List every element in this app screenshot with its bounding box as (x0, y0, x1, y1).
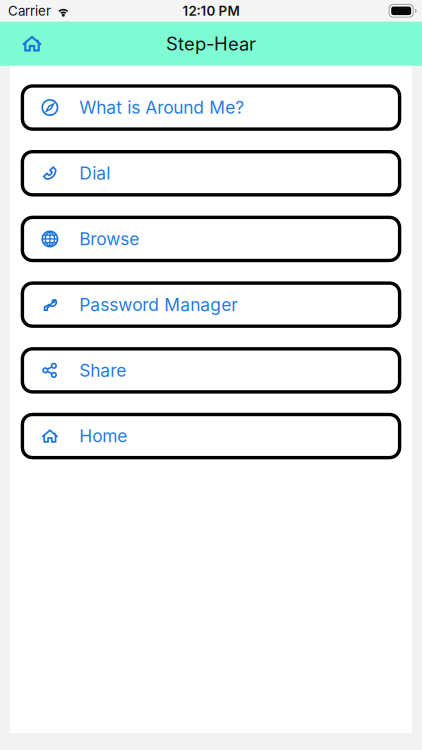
button[interactable]: What is Around Me? (21, 84, 401, 131)
button[interactable]: Dial (21, 150, 401, 196)
staticText: Share (79, 360, 126, 381)
staticText: 12:10 PM (182, 3, 239, 19)
button[interactable]: Browse (21, 216, 401, 262)
staticText: Carrier (8, 3, 51, 19)
button[interactable]: Password Manager (21, 281, 401, 328)
staticText: Password Manager (79, 294, 238, 315)
staticText: Browse (79, 228, 139, 249)
button[interactable]: Home (10, 22, 54, 66)
staticText: Home (79, 426, 127, 447)
staticText: What is Around Me? (79, 97, 244, 118)
staticText: Step-Hear (166, 33, 256, 55)
button[interactable]: Home (21, 413, 401, 459)
button[interactable]: Share (21, 347, 401, 394)
staticText: Dial (79, 163, 110, 184)
